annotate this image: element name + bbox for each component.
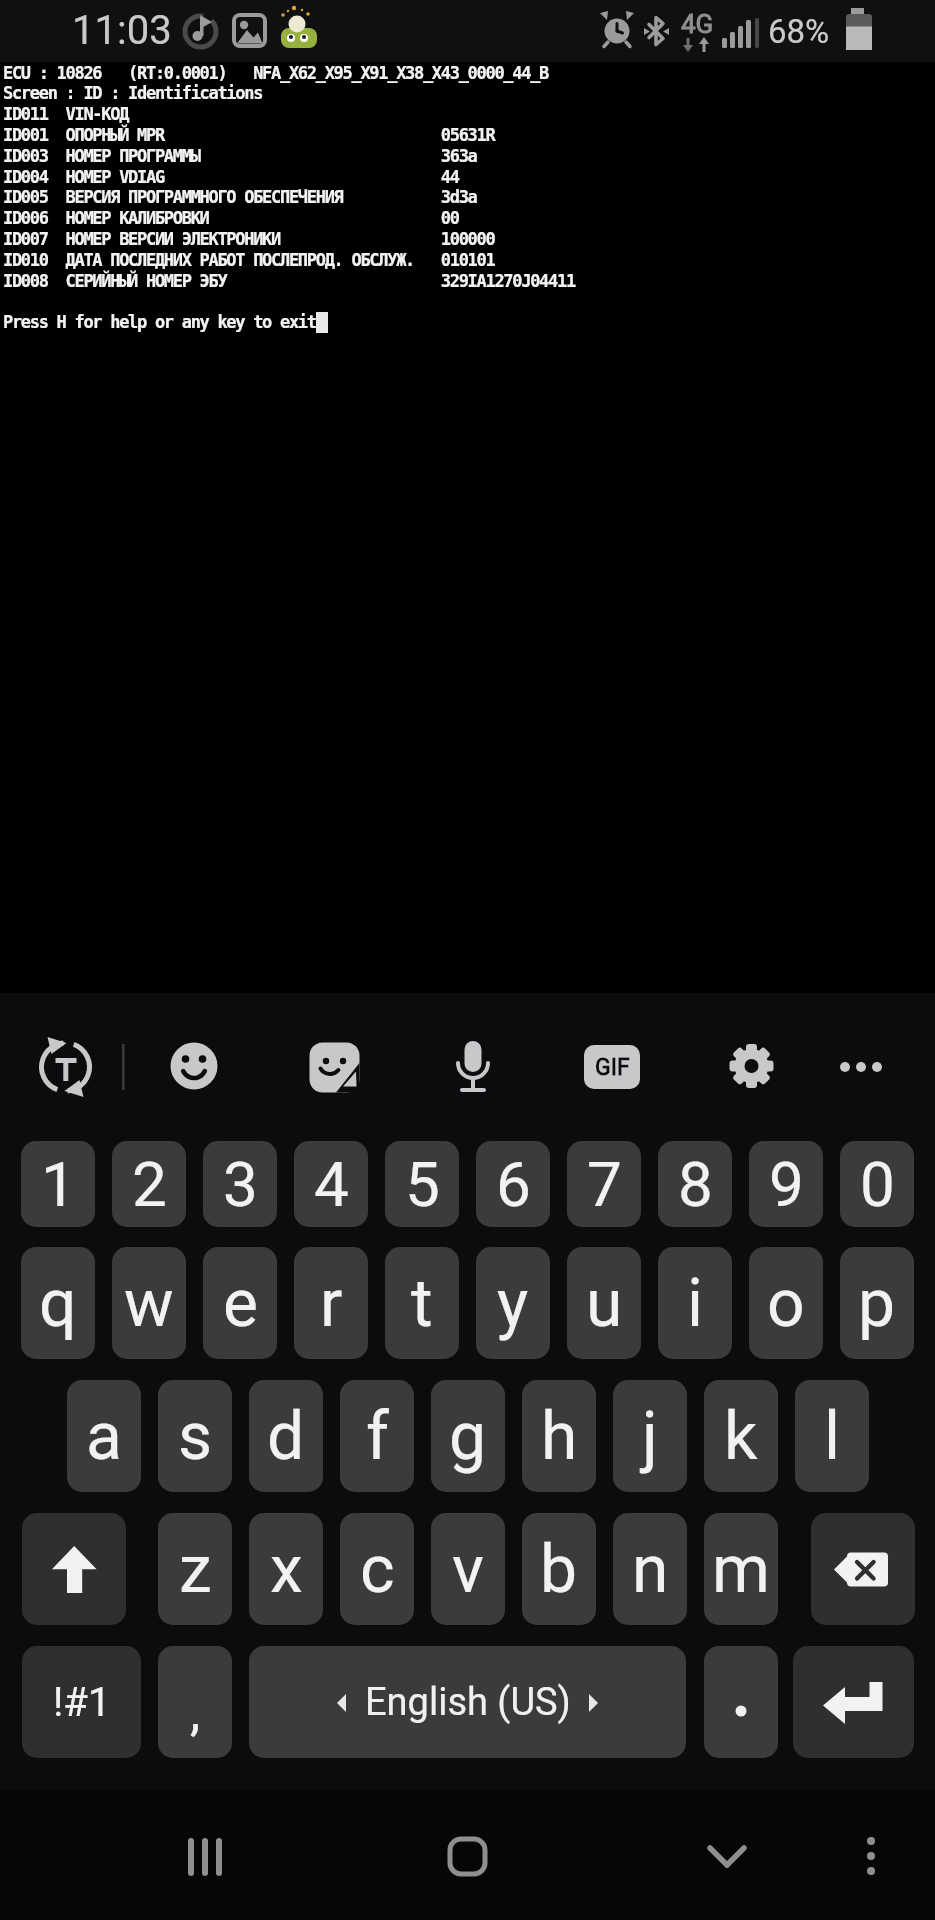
staticText: w [124,1265,174,1342]
button[interactable]: d [249,1380,323,1492]
staticText: 7 [587,1148,622,1221]
button[interactable]: k [704,1380,778,1492]
staticText: f [366,1398,389,1475]
staticText: GIF [595,1054,630,1081]
button[interactable]: q [21,1247,95,1359]
button[interactable]: b [522,1513,596,1625]
button[interactable] [165,1816,245,1896]
button[interactable]: GIF [584,1045,640,1089]
button[interactable]: g [431,1380,505,1492]
staticText: j [642,1398,658,1475]
button[interactable]: m [704,1513,778,1625]
button[interactable]: c [340,1513,414,1625]
staticText: a [86,1398,122,1475]
button[interactable]: w [112,1247,186,1359]
staticText: 1 [41,1148,76,1221]
button[interactable]: 8 [658,1141,732,1227]
button[interactable]: t [385,1247,459,1359]
button[interactable] [811,1513,915,1625]
staticText: 0 [860,1148,895,1221]
staticText: u [586,1265,623,1342]
staticText: ID006 НОМЕР КАЛИБРОВКИ 00 [3,208,459,228]
staticText: i [687,1265,704,1342]
staticText: Screen : ID : Identifications [3,83,263,103]
staticText: ID001 ОПОРНЫЙ MPR 05631R [3,125,495,145]
staticText: Press H for help or any key to exit [3,312,316,332]
button[interactable]: !#1 [22,1646,141,1758]
staticText: h [541,1398,578,1475]
button[interactable]: 9 [749,1141,823,1227]
staticText: 8 [678,1148,713,1221]
button[interactable]: n [613,1513,687,1625]
button[interactable]: u [567,1247,641,1359]
button[interactable]: e [203,1247,277,1359]
staticText: p [858,1265,896,1342]
button[interactable] [793,1646,914,1758]
button[interactable]: l [795,1380,869,1492]
button[interactable] [832,1816,912,1896]
button[interactable] [427,1816,507,1896]
staticText: !#1 [53,1679,111,1726]
staticText: k [724,1398,758,1475]
staticText: r [320,1265,343,1342]
button[interactable] [580,1035,644,1099]
button[interactable]: p [840,1247,914,1359]
staticText: m [712,1531,770,1608]
staticText: l [824,1398,841,1475]
button[interactable]: y [476,1247,550,1359]
button[interactable] [162,1035,226,1099]
button[interactable]: r [294,1247,368,1359]
button[interactable]: 4 [294,1141,368,1227]
staticText: z [179,1531,212,1608]
staticText: 68% [768,12,830,51]
staticText: ID007 НОМЕР ВЕРСИИ ЭЛЕКТРОНИКИ 100000 [3,229,495,249]
staticText: c [360,1531,395,1608]
button[interactable] [441,1035,505,1099]
button[interactable]: 7 [567,1141,641,1227]
button[interactable]: v [431,1513,505,1625]
button[interactable]: x [249,1513,323,1625]
staticText: 5 [405,1148,440,1221]
staticText: ID004 НОМЕР VDIAG 44 [3,167,459,187]
button[interactable]: f [340,1380,414,1492]
button[interactable] [22,1513,126,1625]
button[interactable] [829,1035,893,1099]
staticText: 9 [769,1148,804,1221]
button[interactable] [720,1035,784,1099]
button[interactable]: o [749,1247,823,1359]
button[interactable]: h [522,1380,596,1492]
button[interactable]: 0 [840,1141,914,1227]
staticText: English (US) [365,1680,571,1725]
staticText: ID008 СЕРИЙНЫЙ НОМЕР ЭБУ 329IA1270J04411 [3,271,575,291]
button[interactable]: 5 [385,1141,459,1227]
staticText: b [540,1531,578,1608]
button[interactable]: a [67,1380,141,1492]
staticText: y [497,1265,529,1342]
button[interactable] [33,1035,97,1099]
staticText: 11:03 [72,7,172,54]
staticText: x [270,1531,303,1608]
button[interactable]: s [158,1380,232,1492]
staticText: ECU : 10826 (RT:0.0001) NFA_X62_X95_X91_… [3,63,549,83]
staticText: e [223,1265,258,1342]
button[interactable]: 2 [112,1141,186,1227]
button[interactable]: z [158,1513,232,1625]
button[interactable]: , [158,1646,232,1758]
button[interactable] [704,1646,778,1758]
button[interactable]: 1 [21,1141,95,1227]
button[interactable]: 3 [203,1141,277,1227]
staticText: 2 [132,1148,167,1221]
button[interactable] [687,1816,767,1896]
staticText: q [39,1265,77,1342]
button[interactable]: j [613,1380,687,1492]
button[interactable]: i [658,1247,732,1359]
staticText: o [767,1265,805,1342]
staticText: ID010 ДАТА ПОСЛЕДНИХ РАБОТ ПОСЛЕПРОД. ОБ… [3,250,495,270]
button[interactable]: 6 [476,1141,550,1227]
button[interactable]: English (US) [249,1646,686,1758]
staticText: 6 [496,1148,531,1221]
staticText: , [190,1682,201,1743]
button[interactable] [302,1035,366,1099]
staticText: 3 [223,1148,258,1221]
staticText: t [411,1265,433,1342]
